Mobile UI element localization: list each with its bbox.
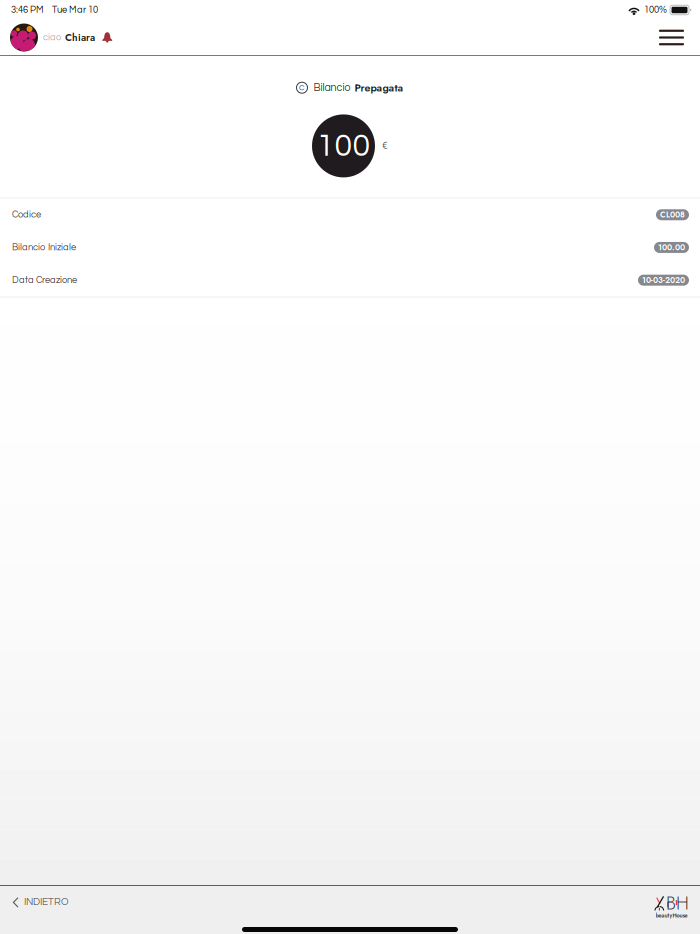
staticText: INDIETRO	[24, 897, 69, 907]
staticText: €	[382, 141, 388, 151]
staticText: 100.00	[658, 242, 685, 253]
staticText: Bilancio Iniziale	[12, 243, 76, 252]
staticText: beautyHouse	[655, 911, 687, 920]
staticText: Data Creazione	[12, 275, 77, 285]
staticText: 100	[316, 129, 370, 162]
staticText: BH	[666, 889, 689, 916]
staticText: Tue Mar 10	[52, 5, 98, 15]
button[interactable]: Codice	[0, 198, 700, 231]
button[interactable]: Bilancio Iniziale	[0, 231, 700, 264]
staticText: C	[299, 84, 305, 92]
staticText: Bilancio	[313, 82, 350, 93]
staticText: 10-03-2020	[642, 274, 685, 286]
staticText: Prepagata	[354, 80, 403, 95]
staticText: CL008	[660, 209, 685, 221]
staticText: Chiara	[65, 30, 95, 45]
staticText: 3:46 PM	[11, 5, 44, 15]
button[interactable]: INDIETRO	[0, 892, 81, 912]
staticText: ciao	[43, 33, 61, 42]
button[interactable]: Data Creazione	[0, 264, 700, 296]
button[interactable]: Menu	[651, 23, 692, 52]
staticText: Codice	[12, 210, 41, 220]
button[interactable]: ciao	[10, 19, 112, 55]
staticText: 100%	[644, 5, 667, 15]
